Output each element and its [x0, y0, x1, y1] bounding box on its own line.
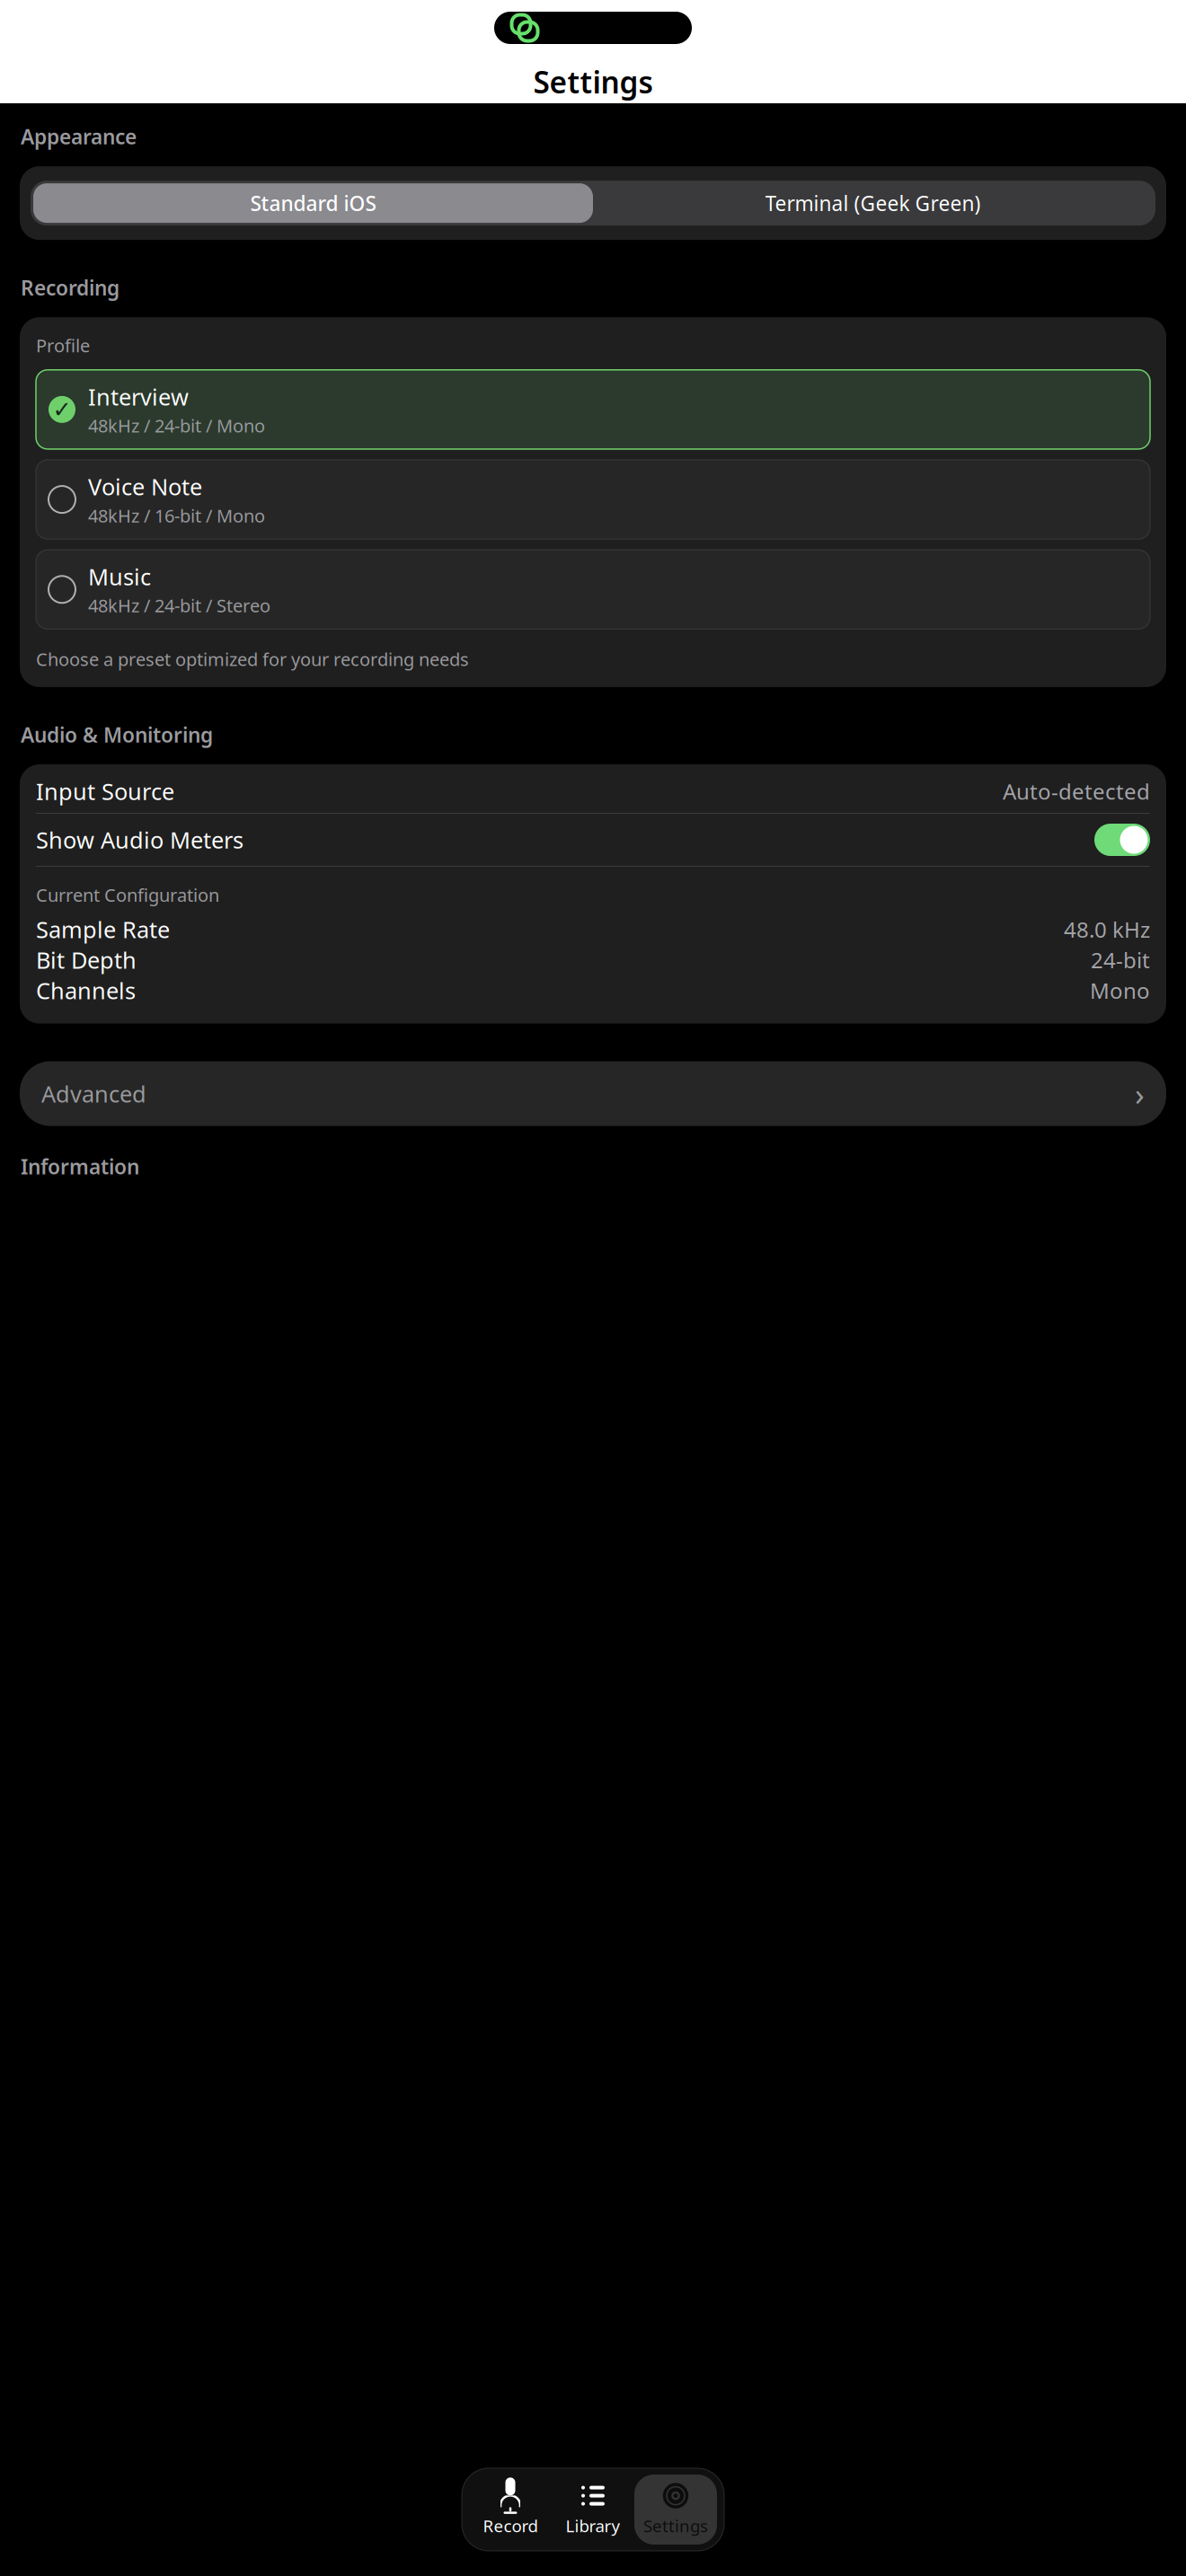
staticText: 48kHz / 24-bit / Stereo: [88, 594, 270, 617]
staticText: Choose a preset optimized for your recor…: [36, 647, 469, 671]
staticText: Information: [21, 1153, 139, 1180]
staticText: Show Audio Meters: [36, 825, 243, 855]
staticText: ›: [1135, 1073, 1145, 1114]
staticText: Auto-detected: [1003, 777, 1150, 806]
button[interactable]: ✓: [36, 370, 1150, 449]
button[interactable]: Voice Note: [36, 460, 1150, 539]
staticText: Current Configuration: [36, 883, 219, 907]
staticText: Record: [483, 2515, 538, 2537]
staticText: Bit Depth: [36, 945, 137, 975]
staticText: Mono: [1090, 976, 1150, 1005]
staticText: 48kHz / 24-bit / Mono: [88, 414, 265, 437]
staticText: 48kHz / 16-bit / Mono: [88, 504, 265, 527]
staticText: Audio & Monitoring: [21, 721, 213, 748]
staticText: ✓: [53, 397, 71, 422]
staticText: Appearance: [21, 123, 137, 150]
button[interactable]: Music: [36, 550, 1150, 629]
button[interactable]: Library: [552, 2475, 634, 2545]
button[interactable]: Standard iOS: [33, 183, 593, 223]
staticText: Settings: [643, 2515, 708, 2537]
staticText: Terminal (Geek Green): [765, 190, 981, 217]
button[interactable]: Terminal (Geek Green): [593, 183, 1153, 223]
button[interactable]: Advanced: [20, 1061, 1166, 1126]
staticText: Voice Note: [88, 472, 202, 502]
staticText: Settings: [533, 62, 653, 102]
staticText: 24-bit: [1091, 946, 1150, 974]
staticText: Interview: [88, 382, 189, 412]
staticText: Profile: [36, 333, 90, 357]
staticText: Channels: [36, 975, 136, 1005]
button[interactable]: Input Source: [36, 770, 1150, 813]
staticText: 48.0 kHz: [1064, 915, 1150, 944]
staticText: Input Source: [36, 776, 174, 806]
staticText: Sample Rate: [36, 914, 170, 944]
staticText: Advanced: [41, 1079, 146, 1109]
staticText: Library: [566, 2515, 620, 2537]
button[interactable]: Record: [469, 2475, 552, 2545]
staticText: Recording: [21, 274, 119, 301]
staticText: Music: [88, 562, 151, 592]
button[interactable]: Show Audio Meters: [36, 814, 1150, 866]
staticText: Standard iOS: [250, 190, 376, 217]
button[interactable]: Settings: [634, 2475, 717, 2545]
